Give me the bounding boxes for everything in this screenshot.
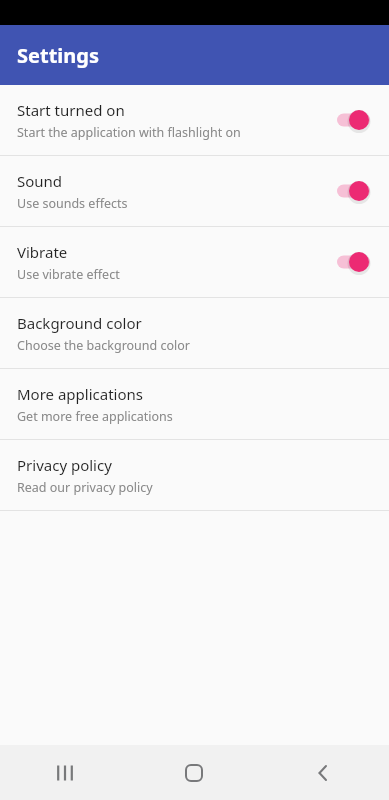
staticText: Start turned on — [17, 100, 125, 120]
button[interactable]: Privacy policy — [0, 440, 389, 510]
staticText: Choose the background color — [17, 337, 191, 354]
staticText: More applications — [17, 384, 143, 404]
button[interactable]: Background color — [0, 298, 389, 368]
staticText: Sound — [17, 171, 63, 191]
staticText: Privacy policy — [17, 455, 112, 475]
button[interactable]: Start turned on — [0, 85, 389, 155]
button[interactable]: Recent apps — [0, 745, 129, 800]
button[interactable]: Toggle switch — [330, 248, 370, 276]
button[interactable]: Back — [259, 745, 389, 800]
staticText: Get more free applications — [17, 408, 173, 425]
staticText: Settings — [17, 42, 99, 69]
staticText: Background color — [17, 313, 142, 333]
staticText: Read our privacy policy — [17, 479, 153, 496]
staticText: Use vibrate effect — [17, 266, 120, 283]
button[interactable]: Toggle switch — [330, 106, 370, 134]
button[interactable]: More applications — [0, 369, 389, 439]
button[interactable]: Sound — [0, 156, 389, 226]
button[interactable]: Toggle switch — [330, 177, 370, 205]
staticText: Use sounds effects — [17, 195, 128, 212]
staticText: Start the application with flashlight on — [17, 124, 241, 141]
staticText: Vibrate — [17, 242, 68, 262]
button[interactable]: Vibrate — [0, 227, 389, 297]
button[interactable]: Home — [129, 745, 259, 800]
